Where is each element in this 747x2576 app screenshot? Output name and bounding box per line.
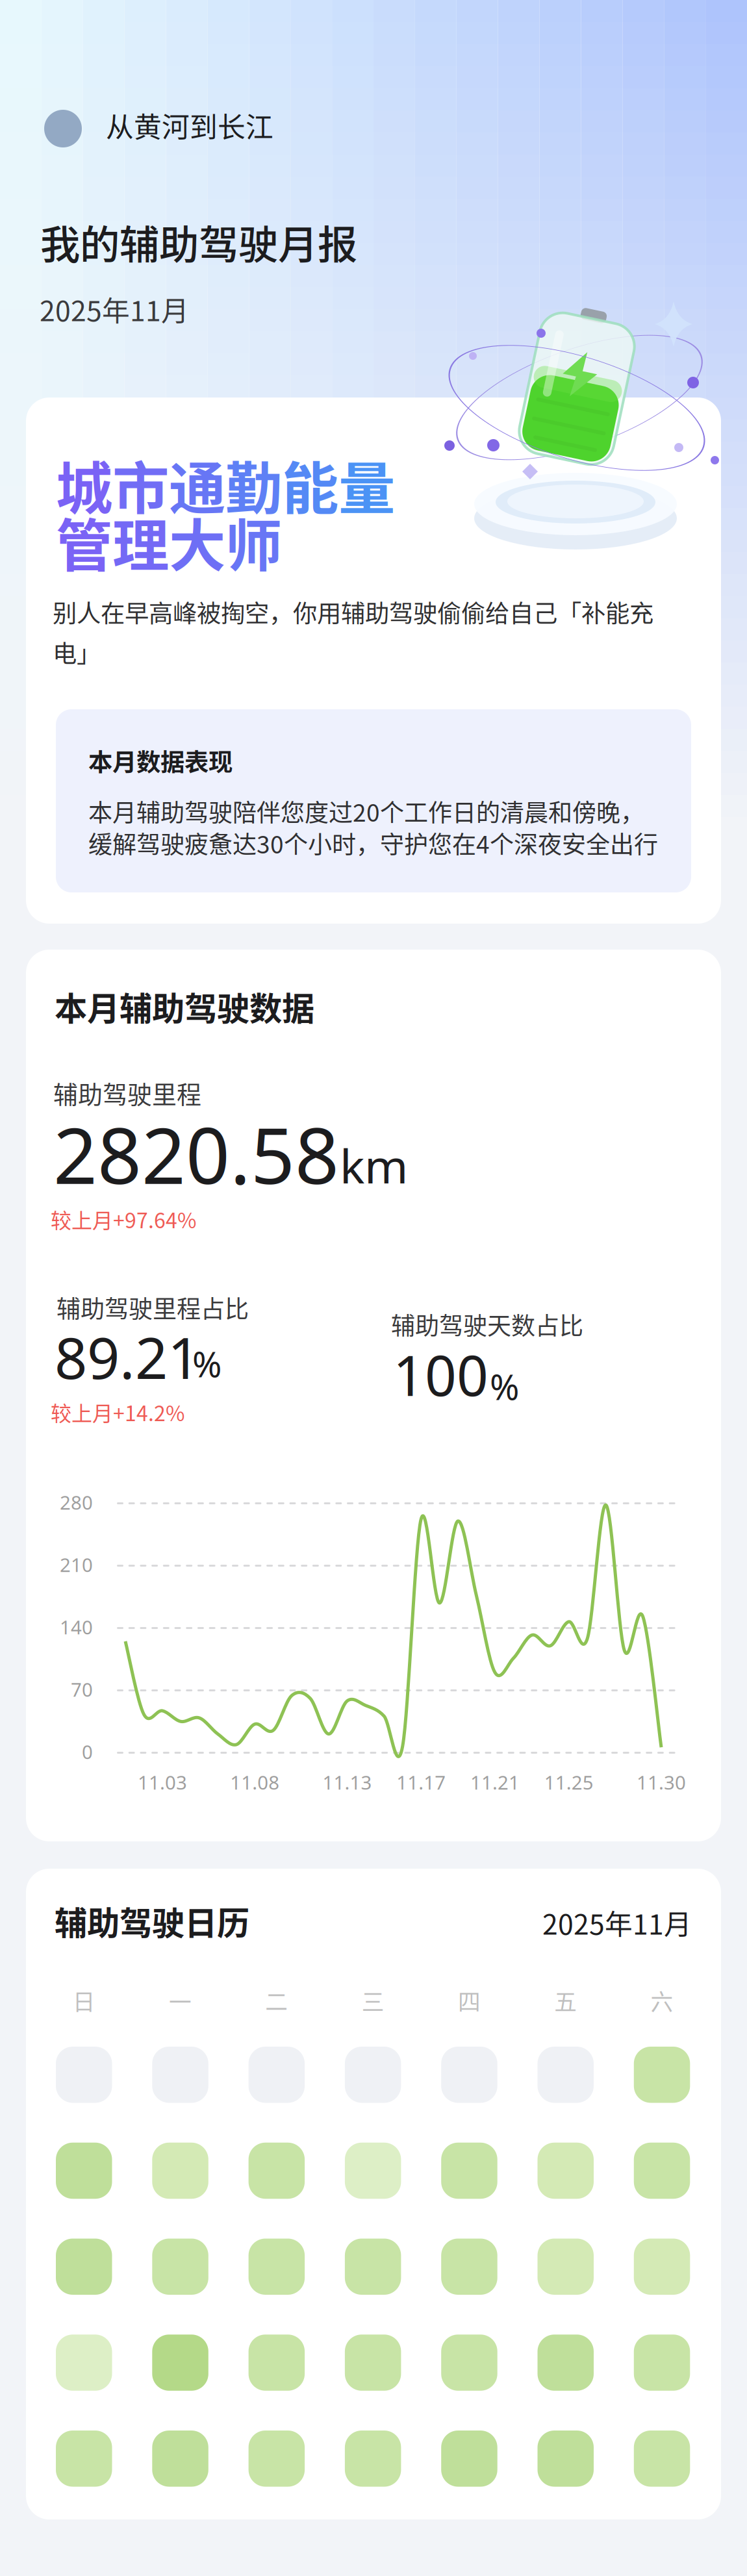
- staticText: 大: [169, 501, 225, 583]
- staticText: 一: [169, 1984, 192, 2017]
- staticText: 2025年11月: [40, 289, 189, 329]
- staticText: 11.17: [396, 1769, 446, 1795]
- staticText: 70: [71, 1676, 93, 1702]
- staticText: 从黄河到长江: [106, 105, 273, 145]
- staticText: 较上月+14.2%: [51, 1397, 184, 1427]
- staticText: 11.13: [322, 1769, 372, 1795]
- staticText: 电」: [53, 635, 101, 670]
- staticText: 2025年11月: [542, 1902, 692, 1943]
- staticText: 210: [60, 1552, 93, 1578]
- staticText: 11.30: [637, 1769, 686, 1795]
- staticText: 100: [393, 1337, 488, 1412]
- staticText: 城: [56, 444, 112, 526]
- staticText: 本月数据表现: [88, 743, 233, 778]
- staticText: 辅助驾驶里程占比: [57, 1290, 249, 1325]
- staticText: 缓解驾驶疲惫达30个小时，守护您在4个深夜安全出行: [88, 826, 658, 860]
- staticText: 280: [60, 1489, 93, 1515]
- staticText: 本月辅助驾驶陪伴您度过20个工作日的清晨和傍晚，: [88, 794, 644, 829]
- staticText: 二: [265, 1984, 288, 2017]
- staticText: 辅助驾驶日历: [55, 1897, 249, 1945]
- staticText: 2820.58: [53, 1102, 339, 1207]
- staticText: 11.25: [544, 1769, 594, 1795]
- staticText: %: [490, 1362, 519, 1410]
- staticText: 0: [82, 1739, 93, 1765]
- staticText: 140: [60, 1614, 93, 1640]
- staticText: 四: [458, 1984, 481, 2017]
- staticText: 六: [651, 1984, 673, 2017]
- staticText: 11.03: [138, 1769, 187, 1795]
- staticText: 师: [225, 501, 282, 583]
- staticText: 五: [554, 1984, 577, 2017]
- staticText: km: [340, 1133, 408, 1197]
- staticText: 辅助驾驶天数占比: [391, 1307, 583, 1342]
- staticText: 11.08: [230, 1769, 279, 1795]
- staticText: 别人在早高峰被掏空，你用辅助驾驶偷偷给自己「补能充: [53, 594, 653, 629]
- staticText: 能: [282, 444, 338, 526]
- staticText: 通: [169, 444, 225, 526]
- staticText: 我的辅助驾驶月报: [40, 213, 357, 271]
- staticText: 量: [338, 444, 395, 526]
- staticText: 勤: [225, 444, 282, 526]
- staticText: 三: [362, 1984, 384, 2017]
- staticText: 日: [73, 1984, 95, 2017]
- staticText: 辅助驾驶里程: [53, 1075, 201, 1111]
- staticText: 89.21: [55, 1318, 200, 1396]
- staticText: %: [192, 1339, 222, 1388]
- staticText: 管: [56, 501, 112, 583]
- staticText: 11.21: [470, 1769, 520, 1795]
- staticText: 市: [112, 444, 169, 526]
- staticText: 本月辅助驾驶数据: [55, 983, 314, 1030]
- button[interactable]: 从黄河到长江: [0, 0, 364, 62]
- staticText: 理: [112, 501, 169, 583]
- staticText: 较上月+97.64%: [51, 1204, 196, 1234]
